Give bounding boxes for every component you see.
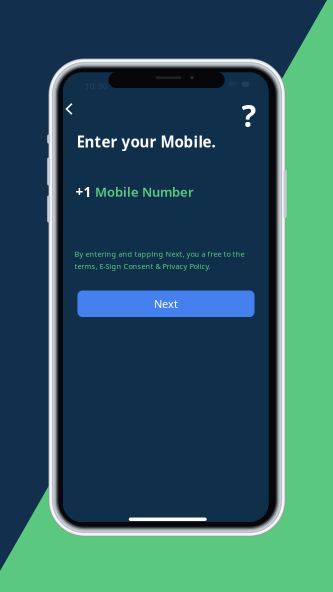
staticText: 10:30	[84, 79, 107, 92]
staticText: Next	[154, 296, 178, 311]
staticText: Enter your Mobile.	[76, 131, 215, 152]
button[interactable]: Back	[56, 95, 82, 123]
staticText: terms, E-Sign Consent & Privacy Policy.	[74, 261, 210, 271]
button[interactable]: Next	[77, 290, 254, 317]
staticText: ?	[241, 95, 256, 135]
staticText: Mobile Number	[95, 183, 194, 201]
button[interactable]: Help	[236, 99, 262, 131]
staticText: By entering and tapping Next, you a free…	[74, 249, 244, 259]
staticText: +1	[75, 182, 91, 201]
